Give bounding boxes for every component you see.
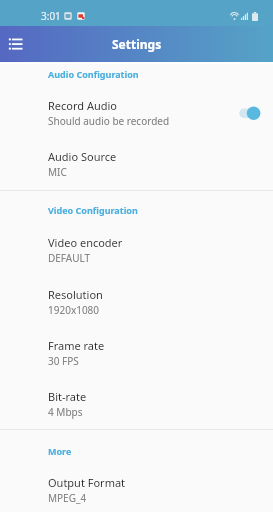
button[interactable]: Open navigation menu bbox=[2, 26, 30, 62]
staticText: DEFAULT bbox=[48, 251, 91, 265]
staticText: Video encoder bbox=[48, 235, 123, 250]
staticText: Bit-rate bbox=[48, 389, 87, 404]
staticText: 1920x1080 bbox=[48, 303, 100, 317]
staticText: Audio Source bbox=[48, 149, 117, 164]
staticText: Settings bbox=[112, 36, 162, 52]
button[interactable]: Bit-rate bbox=[0, 389, 273, 420]
button[interactable]: Record audio, on bbox=[234, 103, 264, 123]
staticText: Resolution bbox=[48, 287, 103, 302]
button[interactable]: Record Audio bbox=[0, 98, 273, 129]
button[interactable]: Resolution bbox=[0, 287, 273, 318]
staticText: MPEG_4 bbox=[48, 491, 87, 505]
staticText: 3:01 bbox=[41, 9, 61, 23]
button[interactable]: Output Format bbox=[0, 475, 273, 506]
staticText: More bbox=[48, 445, 72, 457]
staticText: Audio Configuration bbox=[48, 68, 139, 80]
button[interactable]: Video encoder bbox=[0, 235, 273, 266]
staticText: Frame rate bbox=[48, 338, 105, 353]
staticText: 30 FPS bbox=[48, 354, 79, 368]
staticText: 4 Mbps bbox=[48, 405, 83, 419]
staticText: Output Format bbox=[48, 475, 126, 490]
staticText: Record Audio bbox=[48, 98, 118, 113]
staticText: Video Configuration bbox=[48, 204, 138, 216]
button[interactable]: Audio Source bbox=[0, 149, 273, 180]
staticText: MIC bbox=[48, 165, 67, 179]
button[interactable]: Frame rate bbox=[0, 338, 273, 369]
staticText: Should audio be recorded bbox=[48, 114, 170, 128]
